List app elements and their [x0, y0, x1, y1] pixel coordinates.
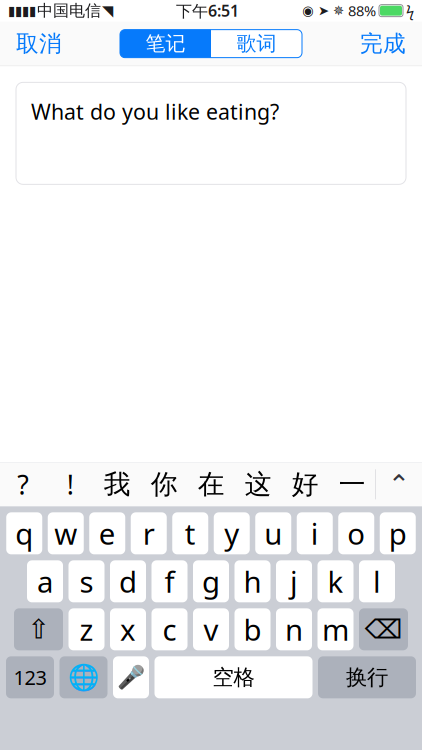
button[interactable]: h	[234, 560, 270, 602]
staticText: r	[143, 514, 155, 553]
button[interactable]: What do you like eating?	[16, 82, 406, 184]
staticText: m	[322, 610, 349, 649]
button[interactable]: Shift	[14, 608, 63, 650]
button[interactable]: 完成	[344, 22, 422, 66]
button[interactable]: f	[151, 560, 187, 602]
staticText: 123	[13, 664, 46, 691]
staticText: o	[347, 514, 365, 553]
staticText: 下午6:51	[176, 0, 239, 21]
staticText: !	[67, 467, 74, 502]
button[interactable]: q	[6, 512, 42, 554]
button[interactable]: 一	[329, 462, 376, 506]
button[interactable]: g	[193, 560, 229, 602]
staticText: ⌫	[364, 614, 402, 644]
staticText: ⌃	[388, 469, 410, 499]
staticText: ?	[17, 467, 29, 502]
button[interactable]: m	[317, 608, 353, 650]
button[interactable]: Dictation	[113, 656, 149, 698]
button[interactable]: c	[151, 608, 187, 650]
button[interactable]: 歌词	[211, 30, 302, 58]
staticText: 🎤	[117, 664, 145, 690]
button[interactable]: z	[68, 608, 104, 650]
staticText: What do you like eating?	[31, 97, 279, 126]
button[interactable]: a	[27, 560, 63, 602]
button[interactable]: ?	[0, 462, 47, 506]
button[interactable]: 在	[188, 462, 235, 506]
button[interactable]: w	[48, 512, 84, 554]
button[interactable]: 好	[282, 462, 329, 506]
button[interactable]: y	[214, 512, 250, 554]
staticText: f	[164, 562, 174, 601]
staticText: p	[389, 514, 407, 553]
staticText: u	[264, 514, 282, 553]
button[interactable]: x	[110, 608, 146, 650]
button[interactable]: Delete	[359, 608, 408, 650]
staticText: a	[37, 562, 53, 601]
button[interactable]: Return	[318, 656, 416, 698]
button[interactable]: 笔记	[120, 30, 211, 58]
button[interactable]: Next keyboard	[59, 656, 107, 698]
staticText: ◉	[302, 3, 314, 18]
button[interactable]: b	[234, 608, 270, 650]
staticText: e	[99, 514, 116, 553]
staticText: h	[243, 562, 261, 601]
staticText: d	[119, 562, 137, 601]
button[interactable]: d	[110, 560, 146, 602]
button[interactable]: 你	[141, 462, 188, 506]
button[interactable]: r	[131, 512, 167, 554]
button[interactable]: Collapse candidates	[376, 462, 422, 506]
staticText: ϟ	[406, 1, 414, 20]
staticText: ➤	[318, 3, 329, 18]
button[interactable]: 取消	[0, 22, 78, 66]
staticText: 中国电信	[37, 1, 101, 20]
button[interactable]: o	[338, 512, 374, 554]
staticText: g	[202, 562, 220, 601]
staticText: 笔记	[145, 31, 185, 56]
button[interactable]: n	[276, 608, 312, 650]
button[interactable]: i	[297, 512, 333, 554]
staticText: k	[327, 562, 343, 601]
button[interactable]: j	[276, 560, 312, 602]
button[interactable]: !	[47, 462, 94, 506]
staticText: y	[224, 514, 239, 553]
button[interactable]: u	[255, 512, 291, 554]
staticText: 这	[245, 468, 272, 501]
button[interactable]: l	[359, 560, 395, 602]
button[interactable]: p	[380, 512, 416, 554]
button[interactable]: v	[193, 608, 229, 650]
staticText: 你	[151, 468, 178, 501]
staticText: 88%	[348, 1, 376, 20]
button[interactable]: 这	[235, 462, 282, 506]
staticText: n	[285, 610, 303, 649]
button[interactable]: t	[172, 512, 208, 554]
staticText: b	[243, 610, 261, 649]
button[interactable]: Space	[154, 656, 312, 698]
staticText: 我	[104, 468, 131, 501]
staticText: w	[54, 514, 77, 553]
staticText: s	[79, 562, 93, 601]
staticText: v	[203, 610, 218, 649]
staticText: q	[15, 514, 33, 553]
staticText: ✵	[333, 3, 344, 18]
staticText: z	[79, 610, 93, 649]
staticText: ◥	[102, 2, 113, 19]
staticText: l	[373, 562, 381, 601]
staticText: 取消	[16, 30, 62, 57]
staticText: 在	[198, 468, 225, 501]
staticText: 🌐	[67, 663, 99, 692]
button[interactable]: k	[317, 560, 353, 602]
button[interactable]: e	[89, 512, 125, 554]
staticText: 空格	[212, 664, 254, 690]
staticText: 一	[339, 468, 366, 501]
button[interactable]: s	[68, 560, 104, 602]
button[interactable]: 我	[94, 462, 141, 506]
staticText: ⇧	[27, 614, 49, 644]
staticText: c	[162, 610, 176, 649]
staticText: i	[311, 514, 319, 553]
staticText: 完成	[360, 30, 406, 57]
staticText: j	[290, 562, 298, 601]
staticText: t	[185, 514, 196, 553]
button[interactable]: 123	[6, 656, 54, 698]
staticText: 好	[292, 468, 319, 501]
staticText: ▮▮▮▮	[8, 3, 36, 18]
